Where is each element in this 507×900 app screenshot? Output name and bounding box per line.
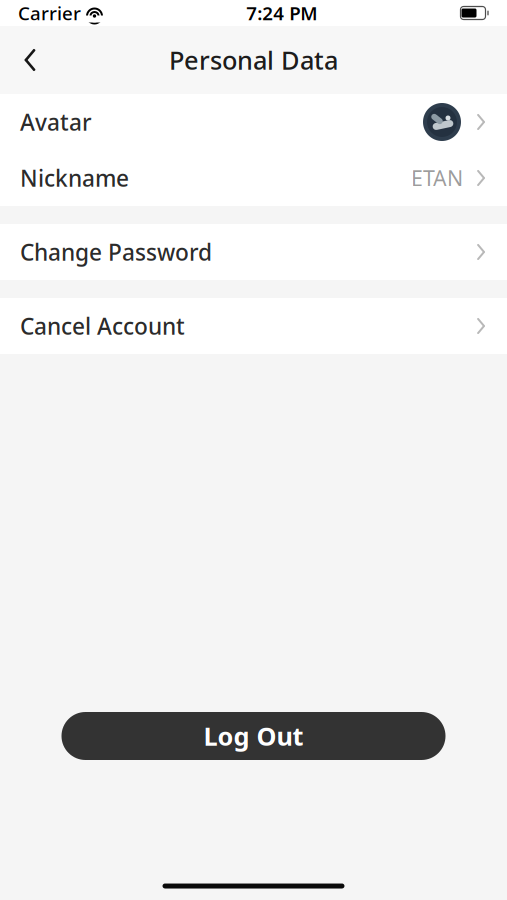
staticText: Carrier <box>18 1 81 25</box>
staticText: ETAN <box>411 164 463 192</box>
button[interactable]: Back <box>8 38 52 82</box>
staticText: Change Password <box>20 237 212 267</box>
button[interactable]: Log Out <box>61 712 445 760</box>
staticText: Cancel Account <box>20 311 185 341</box>
staticText: Personal Data <box>169 43 338 77</box>
button[interactable]: Nickname <box>0 150 507 206</box>
staticText: 7:24 PM <box>246 1 317 25</box>
button[interactable]: Cancel Account <box>0 298 507 354</box>
button[interactable]: Avatar <box>0 94 507 150</box>
staticText: Avatar <box>20 107 92 137</box>
staticText: Log Out <box>203 719 303 753</box>
staticText: Nickname <box>20 163 129 193</box>
button[interactable]: Change Password <box>0 224 507 280</box>
